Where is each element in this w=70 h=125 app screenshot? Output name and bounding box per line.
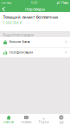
staticText: Рядом [39, 120, 49, 124]
staticText: МТС [7, 1, 12, 5]
staticText: Переводы [25, 6, 45, 12]
button[interactable]: Назад [0, 6, 8, 12]
staticText: Новости банка [9, 40, 29, 44]
staticText: Подробнее операции [3, 33, 34, 37]
staticText: 9:41 [31, 1, 38, 5]
button[interactable]: Платежи [17, 114, 35, 125]
staticText: Платежи [21, 120, 32, 124]
button[interactable]: Ещё [52, 114, 70, 125]
staticText: Главная [3, 120, 14, 124]
staticText: Последние акции [9, 51, 33, 54]
button[interactable]: Главная [0, 114, 17, 125]
button[interactable]: Рядом [35, 114, 52, 125]
button[interactable]: Новости банка [0, 37, 70, 47]
staticText: 1 000 000 ₽ [3, 21, 22, 25]
staticText: ◗ [57, 1, 58, 4]
staticText: Текущий лимит бесплатных [3, 14, 58, 19]
button[interactable]: Последние акции [0, 47, 70, 57]
staticText: 61% [58, 1, 64, 5]
staticText: Ещё [59, 120, 63, 124]
